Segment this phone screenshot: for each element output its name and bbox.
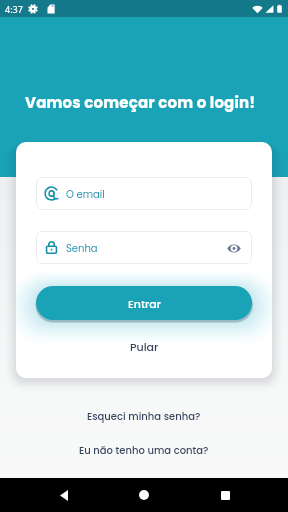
staticText: Entrar	[128, 296, 161, 311]
staticText: 4:37	[5, 3, 23, 15]
button[interactable]: Senha	[36, 231, 252, 264]
staticText: O email	[66, 187, 105, 201]
button[interactable]: O email	[36, 177, 252, 210]
staticText: Pular	[130, 339, 159, 354]
button[interactable]: Pular	[36, 333, 252, 359]
staticText: Eu não tenho uma conta?	[79, 443, 209, 457]
button[interactable]: Entrar	[36, 286, 252, 320]
button[interactable]: Show password	[224, 238, 244, 258]
staticText: Senha	[66, 241, 98, 255]
staticText: Vamos começar com o login!	[25, 92, 256, 113]
staticText: Esqueci minha senha?	[87, 409, 201, 423]
button[interactable]: Back	[47, 478, 81, 512]
button[interactable]: Eu não tenho uma conta?	[71, 440, 217, 460]
button[interactable]: Recent apps	[208, 478, 242, 512]
button[interactable]: Esqueci minha senha?	[79, 406, 209, 426]
button[interactable]: Home	[127, 478, 161, 512]
